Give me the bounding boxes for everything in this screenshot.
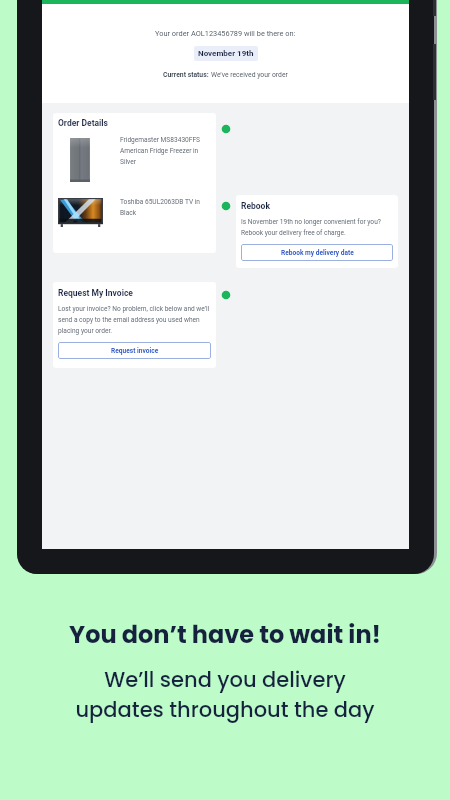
staticText: Rebook my delivery date [281, 249, 354, 257]
staticText: Is November 19th no longer convenient fo… [241, 218, 393, 236]
staticText: You don’t have to wait in! [69, 618, 381, 652]
staticText: November 19th [198, 49, 254, 58]
staticText: We’ll send you delivery updates througho… [75, 665, 375, 724]
staticText: Current status: [163, 71, 211, 79]
staticText: Toshiba 65UL2063DB TV in Black [120, 198, 205, 216]
staticText: Order Details [58, 118, 108, 128]
staticText: We’ve received your order [211, 71, 288, 79]
staticText: Your order AOL123456789 will be there on… [155, 29, 296, 38]
staticText: Rebook [241, 201, 270, 211]
staticText: Request invoice [111, 347, 159, 355]
staticText: Fridgemaster MS83430FFS American Fridge … [120, 136, 205, 165]
staticText: Lost your invoice? No problem, click bel… [58, 305, 211, 334]
button[interactable]: Request invoice [58, 342, 211, 359]
staticText: Request My Invoice [58, 288, 133, 298]
button[interactable]: Rebook my delivery date [241, 244, 393, 261]
